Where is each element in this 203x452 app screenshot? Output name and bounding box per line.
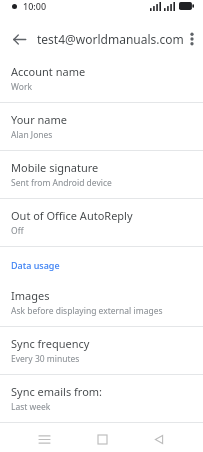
button[interactable]: Your name	[0, 103, 203, 150]
staticText: Mobile signature	[11, 160, 99, 175]
staticText: Account name	[11, 64, 86, 79]
staticText: Images	[11, 288, 50, 303]
staticText: Sent from Android device	[11, 177, 112, 189]
staticText: Ask before displaying external images	[11, 305, 163, 317]
button[interactable]: Out of Office AutoReply	[0, 199, 203, 246]
button[interactable]: More options	[184, 25, 199, 53]
staticText: test4@worldmanuals.com	[37, 31, 184, 47]
button[interactable]: Sync frequency	[0, 327, 203, 374]
staticText: Sync emails from:	[11, 384, 103, 399]
button[interactable]: Images	[0, 279, 203, 326]
button[interactable]: Home	[89, 426, 115, 452]
staticText: Work	[11, 81, 32, 93]
staticText: Sync frequency	[11, 336, 90, 351]
staticText: Alan Jones	[11, 129, 53, 141]
button[interactable]: Mobile signature	[0, 151, 203, 198]
staticText: Your name	[11, 112, 67, 127]
button[interactable]: Back	[146, 426, 172, 452]
staticText: 10:00	[23, 0, 47, 12]
staticText: Data usage	[11, 259, 60, 271]
button[interactable]: Sync emails from:	[0, 375, 203, 422]
staticText: Every 30 minutes	[11, 353, 80, 365]
staticText: Last week	[11, 401, 51, 413]
button[interactable]: Back	[5, 25, 33, 53]
staticText: Off	[11, 225, 24, 237]
staticText: Out of Office AutoReply	[11, 208, 133, 223]
button[interactable]: Recent apps	[31, 426, 57, 452]
button[interactable]: Account name	[0, 55, 203, 102]
